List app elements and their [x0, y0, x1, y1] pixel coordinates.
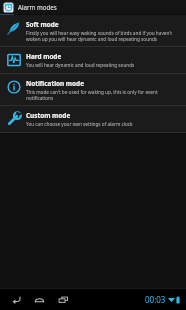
button[interactable]: Home: [27, 289, 51, 310]
staticText: Alarm modes: [18, 3, 57, 11]
button[interactable]: Back: [5, 289, 27, 310]
button[interactable]: Alarm modes: [0, 0, 186, 14]
button[interactable]: Custom mode: [0, 106, 186, 132]
button[interactable]: 00:03: [142, 289, 183, 310]
staticText: Custom mode: [26, 111, 71, 120]
staticText: This mode can't be used for waking up, t…: [26, 89, 181, 101]
staticText: 00:03: [145, 294, 166, 305]
button[interactable]: Soft mode: [0, 15, 186, 46]
button[interactable]: Recent apps: [51, 289, 75, 310]
button[interactable]: Hard mode: [0, 47, 186, 73]
staticText: You will hear dynamic and loud repeating…: [26, 62, 135, 68]
button[interactable]: Notification mode: [0, 74, 186, 105]
staticText: Firstly you will hear easy waking sounds…: [26, 30, 181, 42]
staticText: Notification mode: [26, 79, 84, 88]
staticText: You can choose your own settings of alar…: [26, 121, 133, 127]
staticText: Soft mode: [26, 20, 59, 29]
staticText: Hard mode: [26, 52, 62, 61]
